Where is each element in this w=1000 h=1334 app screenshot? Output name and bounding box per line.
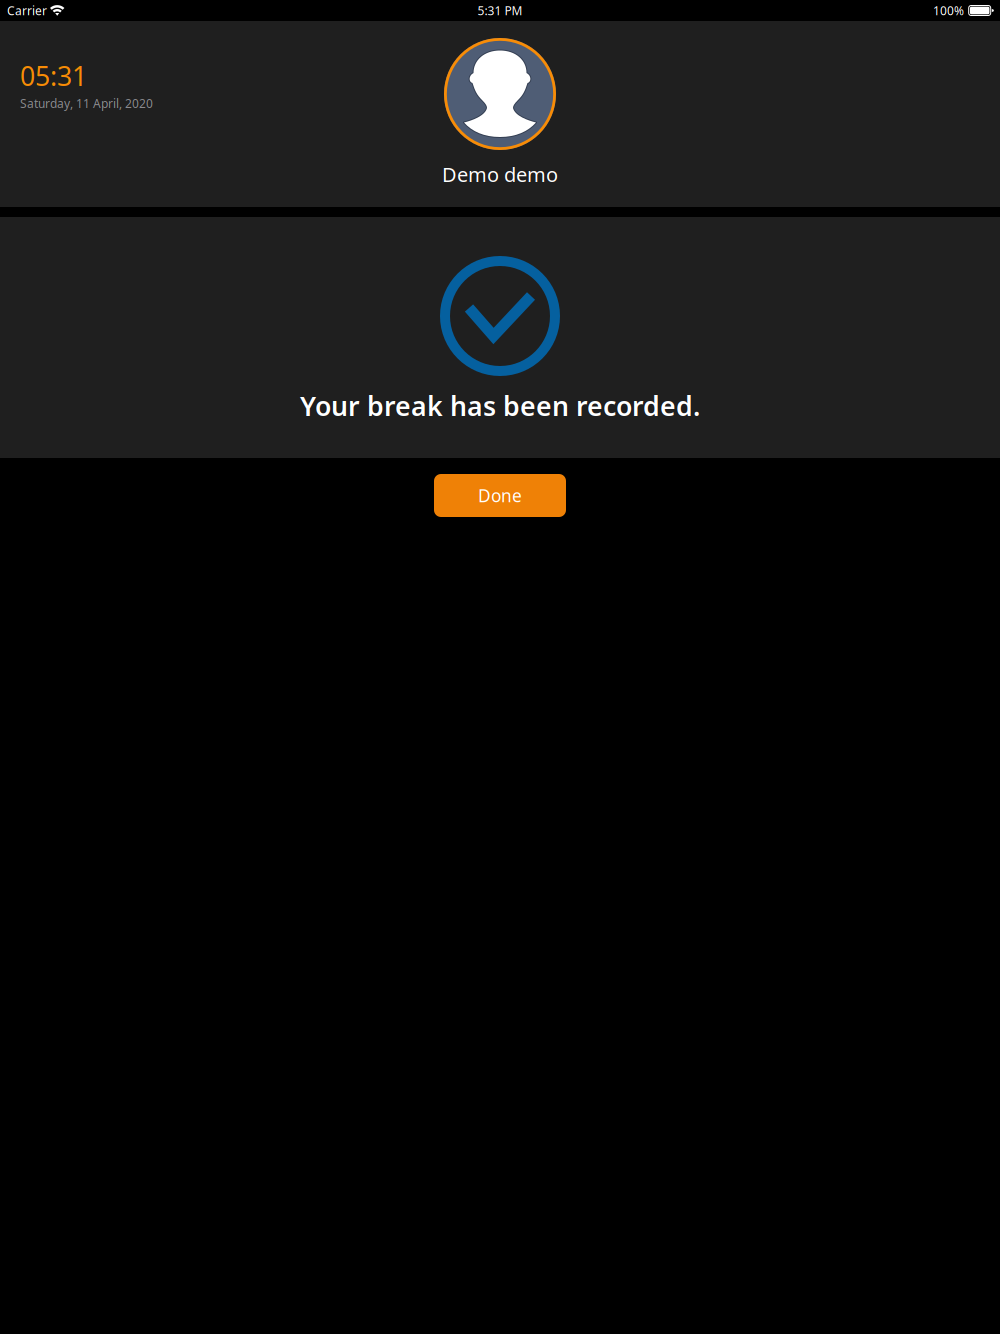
staticText: 5:31 PM bbox=[477, 2, 522, 18]
staticText: 05:31 bbox=[20, 58, 87, 93]
staticText: Your break has been recorded. bbox=[300, 388, 700, 423]
staticText: 100% bbox=[933, 2, 964, 18]
staticText: Demo demo bbox=[442, 161, 558, 188]
staticText: Saturday, 11 April, 2020 bbox=[20, 95, 153, 111]
staticText: Done bbox=[478, 484, 522, 507]
button[interactable]: Done bbox=[434, 474, 566, 517]
staticText: Carrier bbox=[7, 2, 47, 18]
